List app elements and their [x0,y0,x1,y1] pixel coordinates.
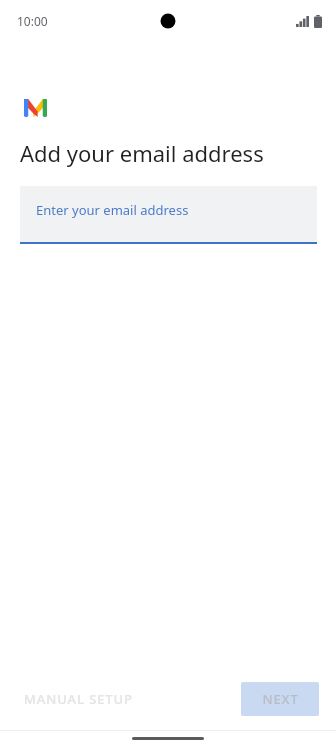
staticText: Enter your email address [36,201,189,219]
staticText: NEXT [262,690,299,708]
button[interactable]: MANUAL SETUP [16,681,141,717]
staticText: 10:00 [17,13,48,29]
staticText: Add your email address [20,138,264,168]
button[interactable]: Enter your email address [20,186,317,244]
button[interactable]: NEXT [241,682,319,716]
staticText: MANUAL SETUP [24,690,133,708]
other: Gmail [24,99,47,117]
